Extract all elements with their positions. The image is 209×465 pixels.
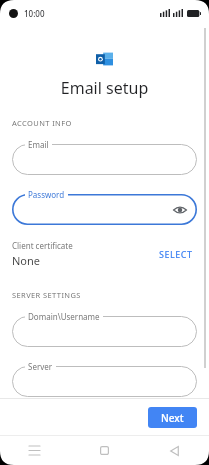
button[interactable]: Server: [12, 366, 197, 397]
button[interactable]: Recent apps: [0, 436, 69, 465]
staticText: Email: [28, 139, 49, 150]
staticText: ACCOUNT INFO: [12, 118, 72, 128]
button[interactable]: Next: [148, 407, 197, 428]
button[interactable]: SELECT: [155, 244, 197, 264]
button[interactable]: Back: [139, 436, 209, 465]
button[interactable]: Show password: [172, 202, 188, 218]
staticText: SELECT: [159, 248, 193, 260]
staticText: 10:00: [24, 8, 45, 19]
button[interactable]: Home: [69, 436, 139, 465]
staticText: Password: [28, 189, 65, 200]
staticText: Client certificate: [12, 240, 73, 251]
button[interactable]: Email: [12, 144, 197, 175]
staticText: None: [12, 253, 41, 268]
button[interactable]: Domain\Username: [12, 316, 197, 347]
staticText: Server: [28, 361, 53, 372]
staticText: Email setup: [12, 77, 197, 99]
staticText: Next: [161, 411, 184, 425]
button[interactable]: Password: [12, 194, 197, 225]
button[interactable]: Client certificate: [12, 240, 197, 268]
staticText: SERVER SETTINGS: [12, 290, 81, 300]
staticText: Domain\Username: [28, 311, 100, 322]
